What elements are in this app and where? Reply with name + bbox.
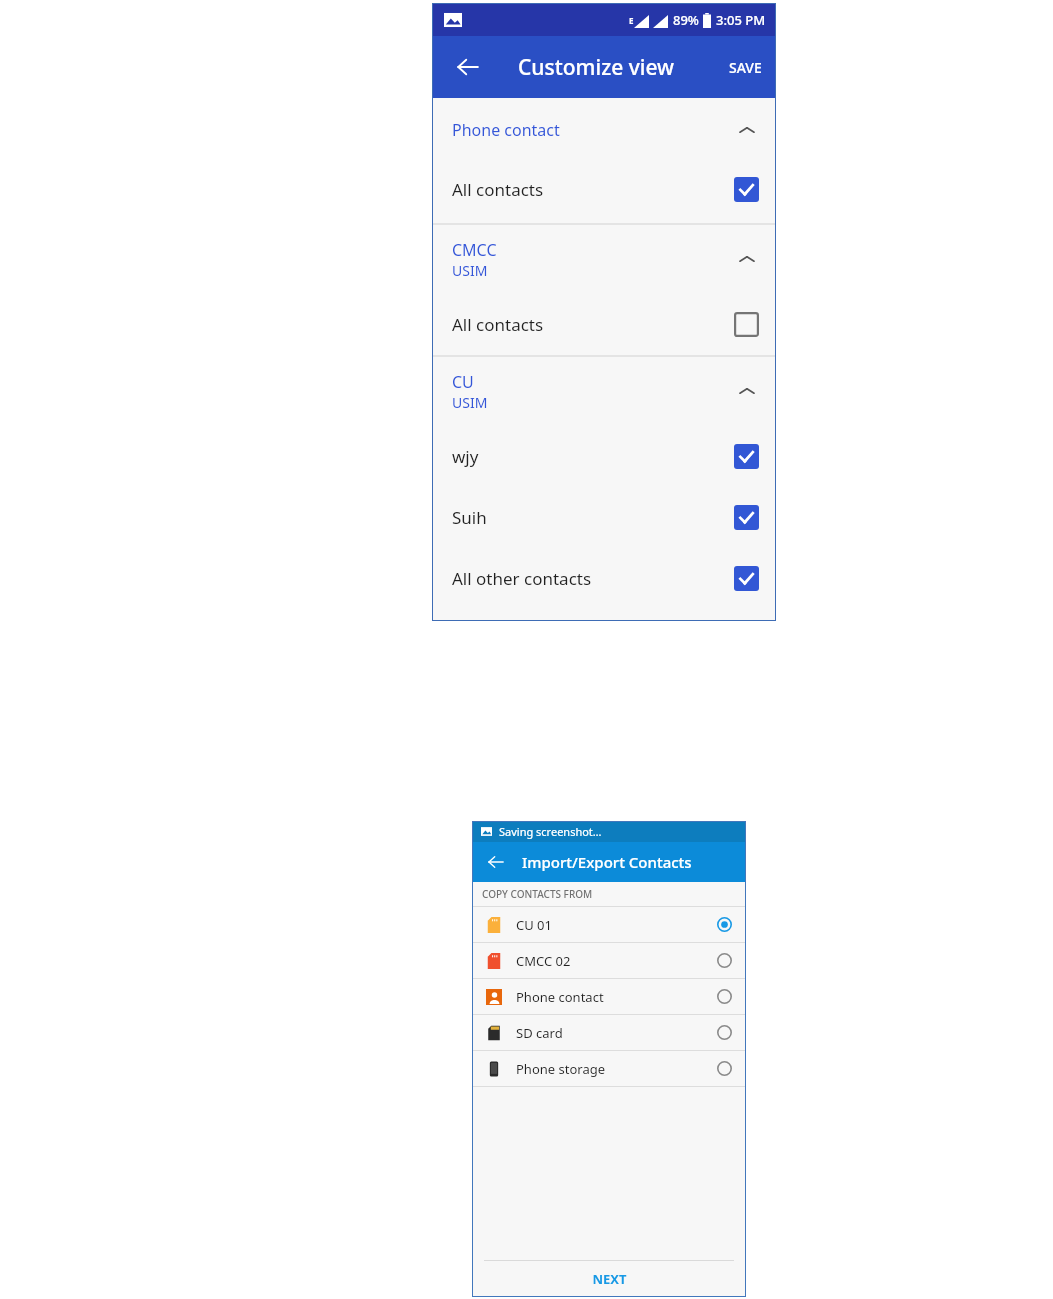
button[interactable]: All other contacts: [432, 548, 776, 609]
button[interactable]: NEXT: [472, 1261, 746, 1297]
staticText: USIM: [452, 261, 488, 280]
staticText: CU: [452, 371, 474, 393]
staticText: CMCC 02: [516, 952, 571, 970]
staticText: Phone contact: [452, 119, 560, 141]
staticText: Phone contact: [516, 988, 604, 1006]
staticText: All contacts: [452, 313, 544, 336]
staticText: COPY CONTACTS FROM: [482, 887, 593, 901]
staticText: SAVE: [729, 58, 762, 77]
staticText: NEXT: [592, 1270, 627, 1288]
button[interactable]: Back: [446, 45, 490, 89]
button[interactable]: Phone storage: [472, 1051, 746, 1086]
button[interactable]: CMCC 02: [472, 943, 746, 978]
staticText: All other contacts: [452, 567, 592, 590]
staticText: 89%: [673, 11, 699, 29]
button[interactable]: Back: [480, 846, 512, 878]
button[interactable]: SD card: [472, 1015, 746, 1050]
button[interactable]: Phone contact: [432, 104, 776, 156]
staticText: Suih: [452, 506, 487, 529]
staticText: Phone storage: [516, 1060, 606, 1078]
staticText: wjy: [452, 445, 479, 468]
staticText: Saving screenshot…: [499, 824, 602, 839]
staticText: All contacts: [452, 178, 544, 201]
button[interactable]: CU: [432, 357, 776, 425]
staticText: CU 01: [516, 916, 552, 934]
staticText: USIM: [452, 393, 488, 412]
staticText: 3:05 PM: [716, 11, 766, 29]
button[interactable]: Phone contact: [472, 979, 746, 1014]
staticText: Import/Export Contacts: [522, 852, 692, 872]
button[interactable]: wjy: [432, 425, 776, 487]
staticText: SD card: [516, 1024, 563, 1042]
staticText: CMCC: [452, 239, 497, 261]
button[interactable]: All contacts: [432, 156, 776, 222]
staticText: Customize view: [518, 53, 674, 82]
button[interactable]: SAVE: [715, 44, 776, 91]
button[interactable]: CMCC: [432, 225, 776, 293]
button[interactable]: All contacts: [432, 293, 776, 355]
staticText: E: [629, 15, 634, 26]
button[interactable]: Suih: [432, 487, 776, 548]
button[interactable]: CU 01: [472, 907, 746, 942]
